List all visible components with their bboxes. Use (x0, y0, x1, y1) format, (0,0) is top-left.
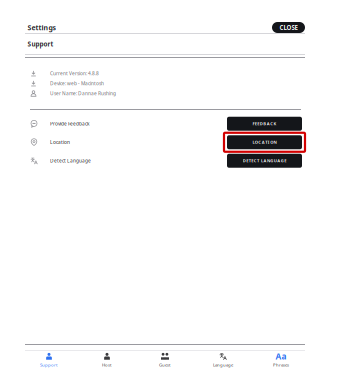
staticText: Device: web - Macintosh (50, 80, 104, 87)
staticText: Guest (159, 362, 171, 368)
staticText: Language (213, 362, 233, 368)
button[interactable]: Support (20, 351, 78, 369)
staticText: Support (27, 40, 53, 48)
button[interactable]: Host (78, 351, 136, 369)
staticText: Host (102, 362, 112, 368)
staticText: Current Version: 4.8.8 (50, 70, 99, 77)
staticText: Location (50, 139, 70, 145)
staticText: LOCATION (252, 139, 277, 145)
button[interactable]: Aa (252, 351, 310, 369)
button[interactable]: Language (194, 351, 252, 369)
button[interactable]: DETECT LANGUAGE (227, 154, 302, 168)
button[interactable]: FEEDBACK (227, 117, 302, 131)
staticText: CLOSE (279, 23, 297, 32)
staticText: Provide Feedback (50, 120, 90, 127)
staticText: Detect Language (50, 157, 91, 164)
button[interactable]: LOCATION (227, 135, 302, 149)
button[interactable]: CLOSE (272, 22, 305, 33)
staticText: Settings (27, 23, 55, 32)
staticText: Phrases (273, 362, 289, 368)
staticText: Support (40, 362, 58, 368)
staticText: User Name: Dannae Rushing (50, 90, 116, 97)
staticText: DETECT LANGUAGE (243, 158, 286, 163)
button[interactable]: Guest (136, 351, 194, 369)
staticText: FEEDBACK (252, 121, 277, 126)
staticText: Aa (275, 351, 286, 362)
